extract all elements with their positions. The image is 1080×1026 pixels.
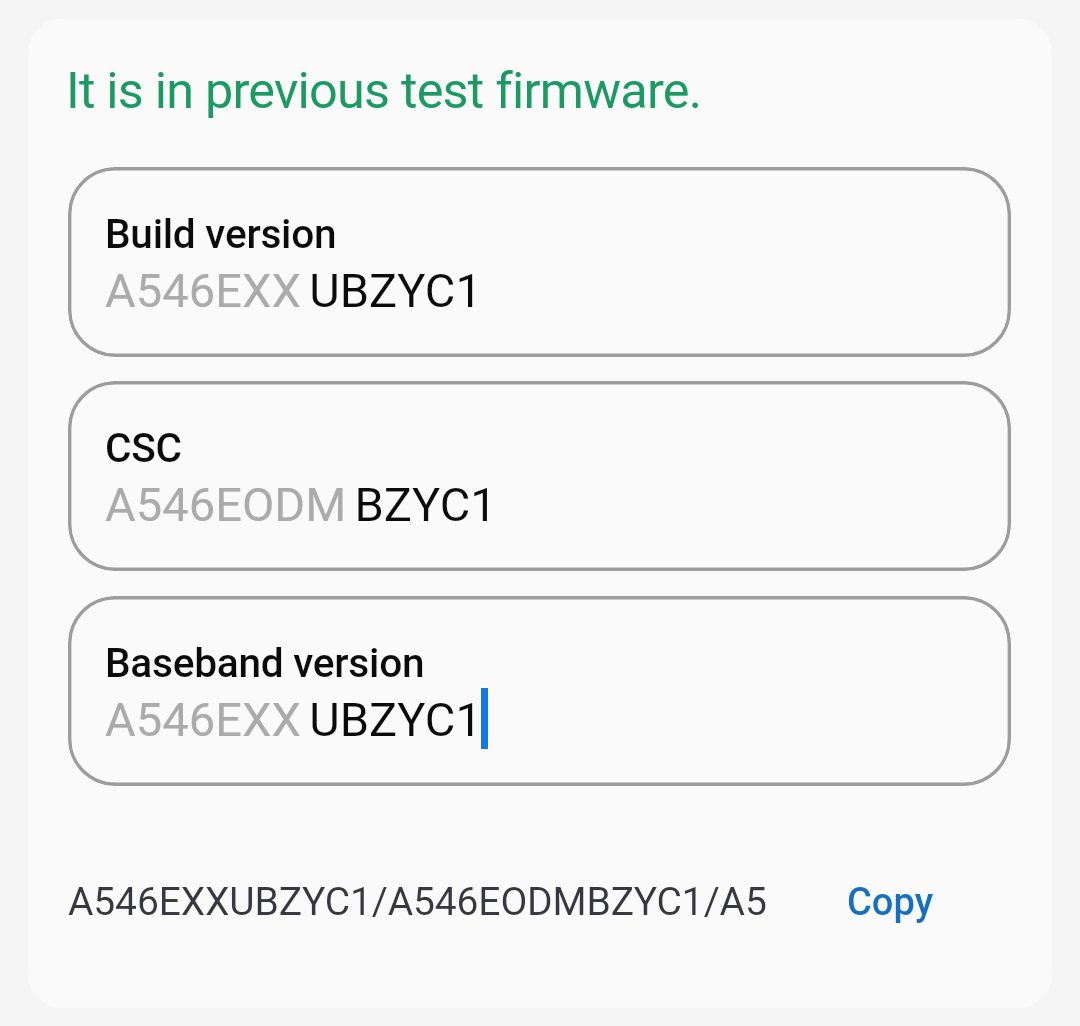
staticText: Copy	[847, 880, 934, 925]
staticText: A546EXX UBZYC1	[105, 692, 482, 747]
staticText: It is in previous test firmware.	[66, 61, 702, 120]
button[interactable]: Copy	[817, 854, 964, 951]
button[interactable]: Build version	[68, 167, 1011, 357]
staticText: A546EXXUBZYC1/A546EODMBZYC1/A5	[68, 879, 767, 925]
staticText: CSC	[105, 424, 182, 472]
staticText: A546EODM BZYC1	[105, 477, 497, 532]
staticText: Build version	[105, 210, 337, 258]
button[interactable]: CSC	[68, 381, 1011, 571]
staticText: Baseband version	[105, 639, 425, 687]
staticText: A546EXX UBZYC1	[105, 263, 482, 318]
button[interactable]: Baseband version	[68, 596, 1011, 786]
